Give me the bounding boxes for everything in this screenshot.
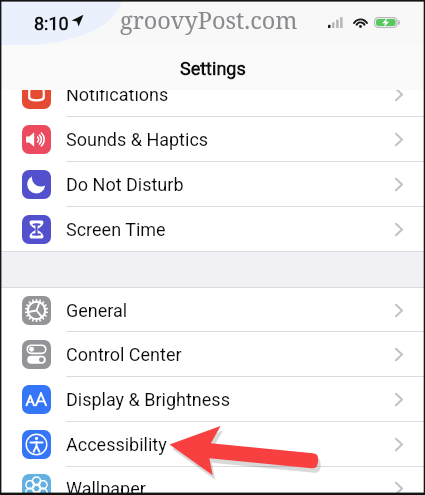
staticText: 8:10 [34,13,69,34]
button[interactable]: Wallpaper [0,467,425,495]
staticText: Control Center [66,344,182,365]
button[interactable]: Do Not Disturb [0,162,425,207]
staticText: Screen Time [66,219,166,240]
button[interactable]: Notifications [0,72,425,117]
button[interactable]: Screen Time [0,207,425,252]
button[interactable]: Display & Brightness [0,377,425,422]
other: Location services active [71,14,84,27]
other: Cellular signal strength [328,17,346,28]
staticText: Display & Brightness [66,389,230,410]
staticText: Settings [180,58,246,79]
staticText: Sounds & Haptics [66,129,209,150]
staticText: Wallpaper [66,478,146,495]
staticText: Do Not Disturb [66,174,184,195]
button[interactable]: Control Center [0,332,425,377]
other: Annotation arrow [0,0,425,495]
other: Wi-Fi connected [352,16,369,28]
button[interactable]: Accessibility [0,422,425,467]
other: Battery charging [374,17,401,28]
staticText: Notifications [66,84,169,105]
staticText: General [66,300,128,321]
button[interactable]: General [0,288,425,332]
staticText: groovyPost.com [120,4,298,36]
button[interactable]: Sounds & Haptics [0,117,425,162]
staticText: Accessibility [66,434,167,455]
